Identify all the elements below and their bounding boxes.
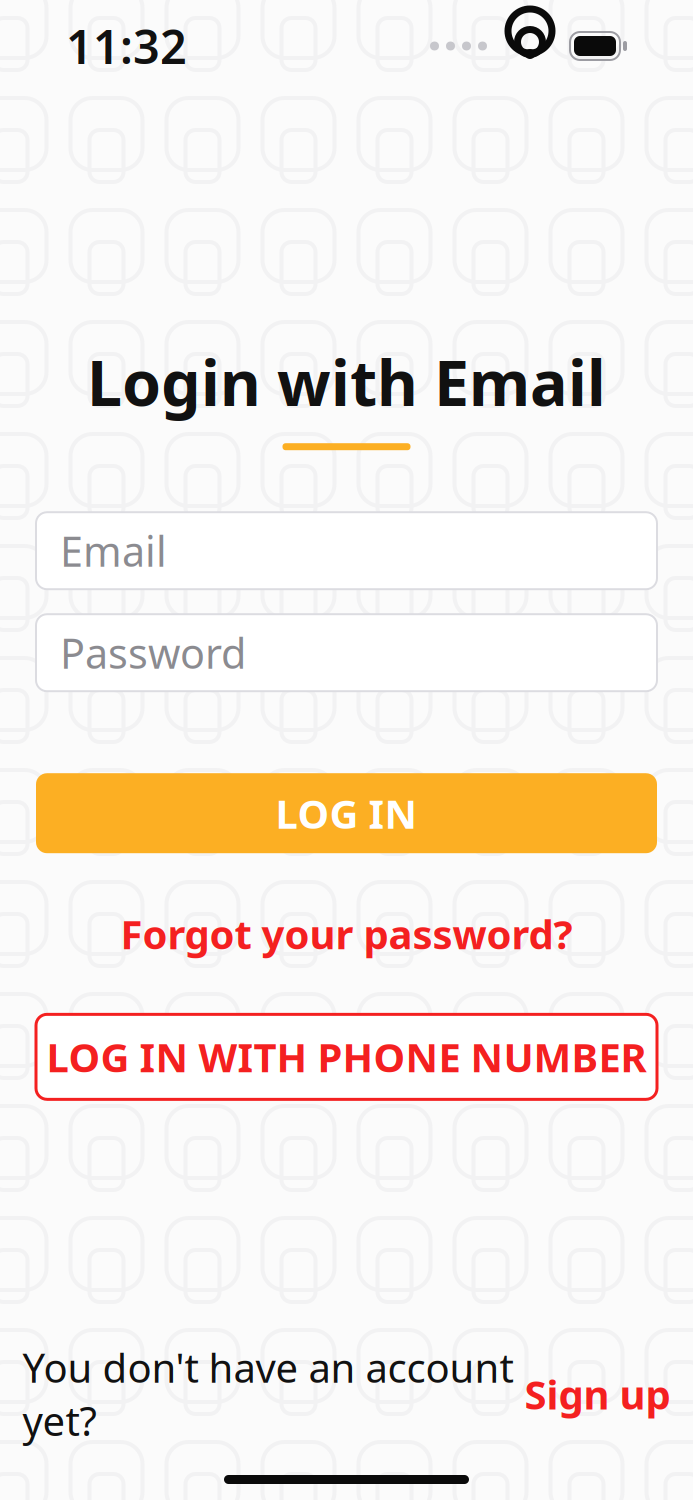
staticText: You don't have an account yet? xyxy=(22,1341,513,1447)
staticText: Password xyxy=(60,625,246,680)
staticText: LOG IN xyxy=(275,787,417,840)
staticText: Email xyxy=(60,523,167,578)
button[interactable]: LOG IN WITH PHONE NUMBER xyxy=(36,1014,657,1099)
staticText: Forgot your password? xyxy=(120,907,572,960)
staticText: LOG IN WITH PHONE NUMBER xyxy=(46,1030,646,1083)
button[interactable]: Forgot your password? xyxy=(96,899,596,968)
staticText: Sign up xyxy=(524,1367,670,1420)
button[interactable]: LOG IN xyxy=(36,773,657,853)
staticText: 11:32 xyxy=(66,15,187,77)
staticText: Login with Email xyxy=(87,340,606,423)
button[interactable]: You don't have an account yet? xyxy=(22,1335,670,1453)
button[interactable]: Password xyxy=(36,614,657,691)
button[interactable]: Email xyxy=(36,512,657,589)
